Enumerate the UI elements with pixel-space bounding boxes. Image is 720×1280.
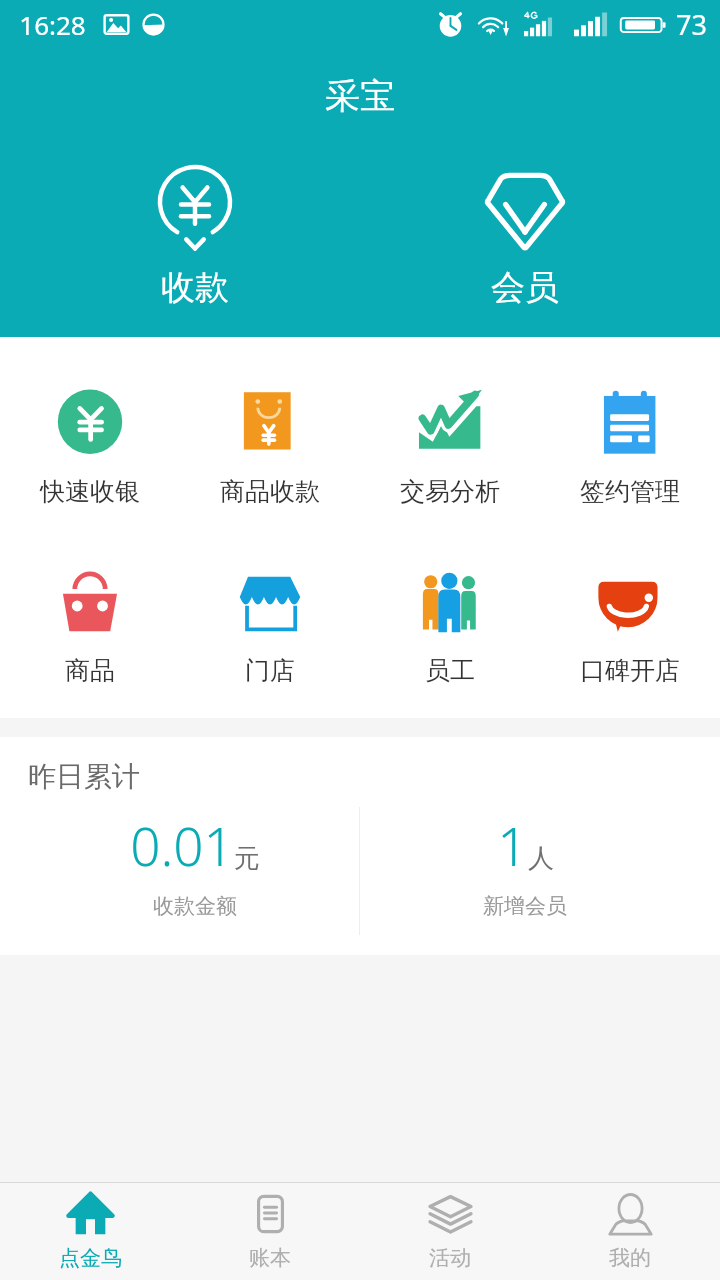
staticText: 门店 <box>245 655 295 686</box>
button[interactable]: 门店 <box>180 568 360 686</box>
button[interactable]: Home <box>0 1183 180 1280</box>
button[interactable]: 1 <box>360 809 690 919</box>
button[interactable]: Collect payment <box>30 168 360 309</box>
staticText: 元 <box>234 842 260 875</box>
button[interactable]: Activities <box>360 1183 540 1280</box>
staticText: 快速收银 <box>40 476 140 507</box>
staticText: 采宝 <box>325 74 395 118</box>
staticText: 收款 <box>161 266 229 309</box>
other: Activities <box>428 1192 473 1236</box>
button[interactable]: 签约管理 <box>540 389 720 507</box>
staticText: 员工 <box>425 655 475 686</box>
staticText: 昨日累计 <box>28 759 140 794</box>
staticText: 活动 <box>429 1245 471 1271</box>
staticText: 签约管理 <box>580 476 680 507</box>
other: Profile <box>608 1192 653 1236</box>
staticText: 16:28 <box>19 7 86 42</box>
other: Home <box>68 1192 113 1236</box>
button[interactable]: 商品 <box>0 568 180 686</box>
staticText: 口碑开店 <box>580 655 680 686</box>
staticText: 点金鸟 <box>59 1245 122 1271</box>
other: Ledger <box>248 1192 293 1236</box>
staticText: 新增会员 <box>483 893 567 919</box>
button[interactable]: 口碑开店 <box>540 568 720 686</box>
staticText: 0.01 <box>130 809 234 881</box>
staticText: 交易分析 <box>400 476 500 507</box>
button[interactable]: 0.01 <box>30 809 360 919</box>
staticText: 人 <box>528 842 554 875</box>
button[interactable]: Members <box>360 168 690 309</box>
other: Members <box>482 168 568 254</box>
button[interactable]: Ledger <box>180 1183 360 1280</box>
button[interactable]: Profile <box>540 1183 720 1280</box>
staticText: 会员 <box>491 266 559 309</box>
staticText: 账本 <box>249 1245 291 1271</box>
other: Collect payment <box>152 168 238 254</box>
staticText: 1 <box>497 809 528 881</box>
staticText: 收款金额 <box>153 893 237 919</box>
button[interactable]: 员工 <box>360 568 540 686</box>
button[interactable]: 交易分析 <box>360 389 540 507</box>
button[interactable]: 快速收银 <box>0 389 180 507</box>
staticText: 商品 <box>65 655 115 686</box>
staticText: 我的 <box>609 1245 651 1271</box>
staticText: 73 <box>676 6 707 43</box>
staticText: 商品收款 <box>220 476 320 507</box>
button[interactable]: 商品收款 <box>180 389 360 507</box>
